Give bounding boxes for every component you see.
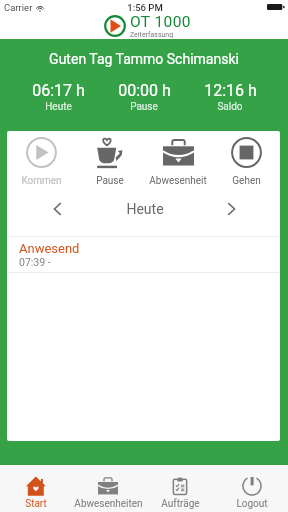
button[interactable]: Logout [216, 465, 288, 512]
staticText: 07:39 - [19, 256, 51, 268]
staticText: Abwesenheit [149, 175, 207, 187]
staticText: Guten Tag Tammo Schimanski [0, 51, 288, 67]
button[interactable]: Abwesenheiten [72, 465, 144, 512]
button[interactable]: Start [0, 465, 72, 512]
staticText: Heute [107, 201, 183, 217]
button[interactable]: Next day [183, 184, 280, 233]
staticText: Gehen [232, 175, 261, 187]
staticText: 06:17 h [32, 81, 85, 100]
staticText: Heute [45, 101, 72, 113]
staticText: Kommen [21, 175, 62, 187]
staticText: Anwesend [19, 241, 80, 256]
button[interactable]: Anwesend [7, 237, 280, 272]
button[interactable]: Kommen [7, 137, 76, 187]
staticText: Carrier [4, 2, 33, 13]
button[interactable]: Gehen [212, 137, 280, 187]
staticText: Zeiterfassung [130, 31, 174, 38]
staticText: Pause [130, 101, 158, 113]
staticText: Start [25, 498, 47, 510]
staticText: Logout [236, 498, 268, 510]
staticText: Aufträge [161, 498, 200, 510]
staticText: 1:56 PM [127, 2, 163, 13]
button[interactable]: Abwesenheit [144, 137, 212, 187]
button[interactable]: Previous day [7, 184, 107, 233]
staticText: Pause [96, 175, 124, 187]
button[interactable]: Aufträge [144, 465, 216, 512]
staticText: Saldo [217, 101, 243, 113]
button[interactable]: Pause [76, 137, 144, 187]
staticText: Abwesenheiten [74, 498, 143, 510]
staticText: 12:16 h [204, 81, 257, 100]
staticText: OT 1000 [130, 13, 191, 31]
staticText: 00:00 h [118, 81, 171, 100]
